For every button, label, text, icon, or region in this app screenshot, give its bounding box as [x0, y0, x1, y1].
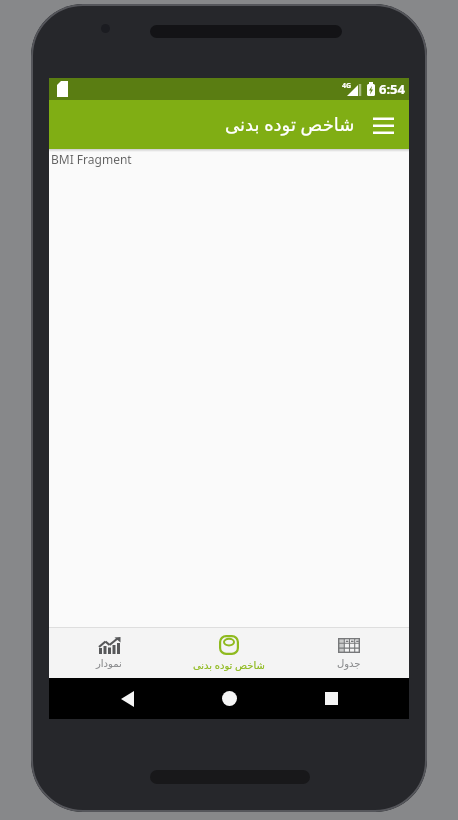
staticText: 4G: [342, 81, 352, 91]
button[interactable]: نمودار: [49, 628, 169, 678]
button[interactable]: جدول: [289, 628, 409, 678]
staticText: 6:54: [379, 80, 405, 98]
button[interactable]: شاخص توده بدنی: [169, 628, 289, 678]
button[interactable]: [365, 107, 401, 143]
button[interactable]: [205, 678, 253, 719]
staticText: جدول: [337, 658, 361, 670]
staticText: BMI Fragment: [51, 151, 132, 167]
staticText: شاخص توده بدنی: [225, 112, 355, 137]
button[interactable]: [103, 678, 151, 719]
button[interactable]: [307, 678, 355, 719]
staticText: شاخص توده بدنی: [193, 658, 265, 672]
staticText: نمودار: [96, 658, 122, 670]
